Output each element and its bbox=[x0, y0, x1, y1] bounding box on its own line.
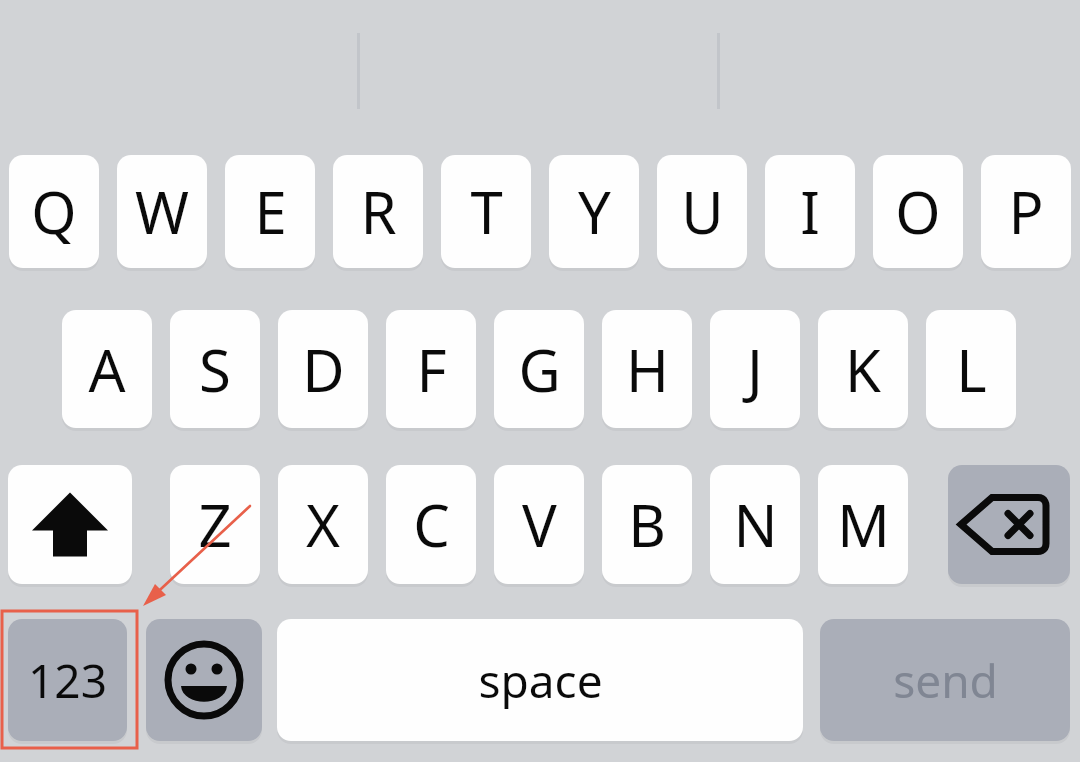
button[interactable]: K bbox=[818, 310, 908, 428]
button[interactable]: D bbox=[278, 310, 368, 428]
staticText: P bbox=[1008, 172, 1044, 251]
button[interactable]: Z bbox=[170, 465, 260, 584]
button[interactable]: space bbox=[277, 619, 803, 741]
button[interactable]: Emoji bbox=[146, 619, 262, 741]
button[interactable]: I bbox=[765, 155, 855, 268]
staticText: S bbox=[199, 330, 231, 409]
staticText: R bbox=[360, 172, 397, 251]
staticText: G bbox=[518, 330, 561, 409]
button[interactable]: O bbox=[873, 155, 963, 268]
staticText: B bbox=[628, 485, 666, 564]
button[interactable]: Y bbox=[549, 155, 639, 268]
staticText: A bbox=[88, 330, 126, 409]
button[interactable]: N bbox=[710, 465, 800, 584]
staticText: L bbox=[956, 330, 987, 409]
staticText: 123 bbox=[28, 649, 107, 712]
button[interactable]: F bbox=[386, 310, 476, 428]
staticText: T bbox=[470, 172, 503, 251]
button[interactable]: send bbox=[820, 619, 1070, 741]
staticText: H bbox=[626, 330, 669, 409]
staticText: space bbox=[478, 649, 603, 712]
staticText: N bbox=[733, 485, 778, 564]
button[interactable]: L bbox=[926, 310, 1016, 428]
staticText: Y bbox=[578, 172, 611, 251]
button[interactable]: H bbox=[602, 310, 692, 428]
staticText: O bbox=[895, 172, 941, 251]
staticText: V bbox=[522, 485, 557, 564]
button[interactable]: B bbox=[602, 465, 692, 584]
staticText: I bbox=[800, 172, 820, 251]
button[interactable]: J bbox=[710, 310, 800, 428]
button[interactable]: G bbox=[494, 310, 584, 428]
staticText: M bbox=[837, 485, 890, 564]
staticText: Q bbox=[31, 172, 77, 251]
button[interactable]: Q bbox=[9, 155, 99, 268]
staticText: W bbox=[135, 172, 189, 251]
staticText: K bbox=[845, 330, 881, 409]
button[interactable]: S bbox=[170, 310, 260, 428]
button[interactable]: U bbox=[657, 155, 747, 268]
staticText: Z bbox=[198, 485, 232, 564]
button[interactable]: A bbox=[62, 310, 152, 428]
button[interactable]: E bbox=[225, 155, 315, 268]
staticText: U bbox=[681, 172, 724, 251]
staticText: D bbox=[302, 330, 345, 409]
button[interactable]: X bbox=[278, 465, 368, 584]
staticText: X bbox=[306, 485, 340, 564]
button[interactable]: 123 bbox=[8, 619, 127, 741]
staticText: C bbox=[413, 485, 450, 564]
button[interactable]: C bbox=[386, 465, 476, 584]
button[interactable]: Delete bbox=[948, 465, 1070, 584]
button[interactable]: R bbox=[333, 155, 423, 268]
button[interactable]: P bbox=[981, 155, 1071, 268]
staticText: F bbox=[416, 330, 447, 409]
staticText: send bbox=[893, 649, 998, 712]
staticText: E bbox=[254, 172, 287, 251]
button[interactable]: T bbox=[441, 155, 531, 268]
button[interactable]: W bbox=[117, 155, 207, 268]
button[interactable]: V bbox=[494, 465, 584, 584]
button[interactable]: M bbox=[818, 465, 908, 584]
staticText: J bbox=[747, 330, 763, 409]
button[interactable]: Shift bbox=[8, 465, 132, 584]
